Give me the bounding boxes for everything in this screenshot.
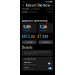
button[interactable]: More options (50, 4, 53, 7)
staticText: $1,500 (37, 35, 48, 39)
staticText: Transfer (26, 41, 33, 43)
staticText: 1.24 (39, 24, 46, 29)
staticText: Checking (22, 8, 29, 10)
staticText: Budget (37, 33, 42, 35)
button[interactable]: 5.89 (22, 23, 37, 33)
button[interactable]: Savings (22, 10, 53, 13)
staticText: Updated today (30, 8, 40, 10)
staticText: Account Overview (25, 4, 49, 7)
button[interactable]: Request (38, 40, 53, 44)
staticText: Account summary (22, 19, 47, 22)
button[interactable]: Notifications (22, 61, 53, 66)
button[interactable]: Transfer (22, 40, 37, 44)
staticText: 5.89 (23, 24, 30, 29)
staticText: Total spend (22, 33, 30, 35)
button[interactable]: Checking (22, 7, 53, 10)
staticText: Since May 1 (39, 30, 47, 31)
button[interactable]: Face ID (22, 66, 53, 71)
staticText: $912.40 (22, 35, 35, 39)
staticText: Face ID (23, 66, 28, 68)
button[interactable]: Back (22, 4, 25, 7)
staticText: Savings (22, 11, 28, 13)
staticText: +2.4% today (23, 30, 31, 31)
staticText: Request (43, 41, 49, 43)
staticText: Unlock instantly (23, 68, 33, 70)
staticText: Notifications (23, 62, 31, 63)
staticText: $4,210.55 (46, 8, 53, 10)
staticText: Details (22, 46, 32, 49)
button[interactable]: Account details (22, 57, 53, 61)
staticText: Alerts and badges (23, 64, 36, 65)
staticText: 9:41 (23, 1, 26, 3)
staticText: Your card is active. Review the new term… (23, 51, 50, 55)
staticText: Account details (23, 58, 35, 60)
button[interactable]: 1.24 (38, 23, 53, 33)
staticText: $1,842.10 (46, 11, 53, 13)
staticText: > (50, 58, 51, 60)
staticText: Interest 3.2% (29, 11, 37, 13)
